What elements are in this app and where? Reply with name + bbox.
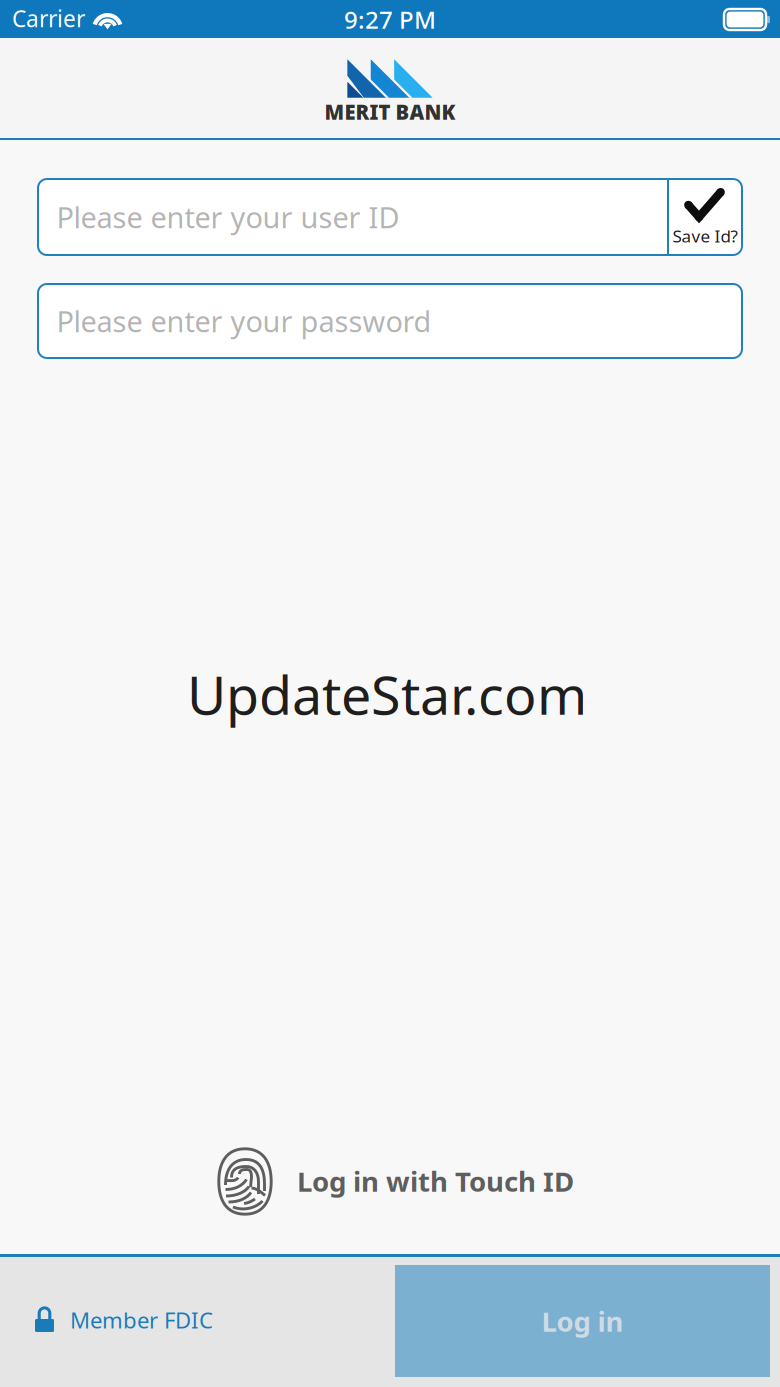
staticText: 9:27 PM — [344, 3, 436, 36]
staticText: Please enter your password — [56, 301, 431, 341]
button[interactable]: Please enter your user ID — [38, 179, 742, 255]
button[interactable]: Log in with Touch ID — [0, 1140, 780, 1226]
staticText: Log in — [541, 1302, 623, 1340]
staticText: UpdateStar.com — [187, 657, 587, 731]
staticText: Please enter your user ID — [56, 197, 399, 237]
button[interactable]: Please enter your password — [38, 284, 742, 358]
button[interactable]: Log in — [395, 1265, 770, 1377]
staticText: Log in with Touch ID — [297, 1162, 574, 1200]
staticText: Carrier — [12, 3, 85, 34]
staticText: MERIT BANK — [324, 98, 455, 126]
staticText: Member FDIC — [70, 1305, 213, 1335]
button[interactable]: Member FDIC — [35, 1304, 335, 1336]
staticText: Save Id? — [672, 224, 737, 248]
